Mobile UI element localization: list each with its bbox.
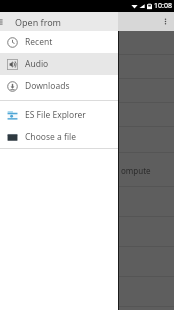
staticText: Recent <box>25 36 53 48</box>
button[interactable]: More options <box>157 12 174 31</box>
button[interactable]: ES File Explorer <box>0 104 118 126</box>
staticText: ompute <box>121 165 151 176</box>
button[interactable]: Downloads <box>0 75 118 97</box>
staticText: Downloads <box>25 80 70 92</box>
staticText: 10:08 <box>154 1 172 11</box>
staticText: Open from <box>15 16 62 28</box>
button[interactable]: Audio <box>0 53 118 75</box>
button[interactable]: Choose a file <box>0 126 118 148</box>
button[interactable]: Recent <box>0 31 118 53</box>
staticText: Choose a file <box>25 131 77 143</box>
staticText: ES File Explorer <box>25 109 86 121</box>
staticText: Audio <box>25 58 49 70</box>
button[interactable]: Open navigation menu <box>0 12 9 31</box>
